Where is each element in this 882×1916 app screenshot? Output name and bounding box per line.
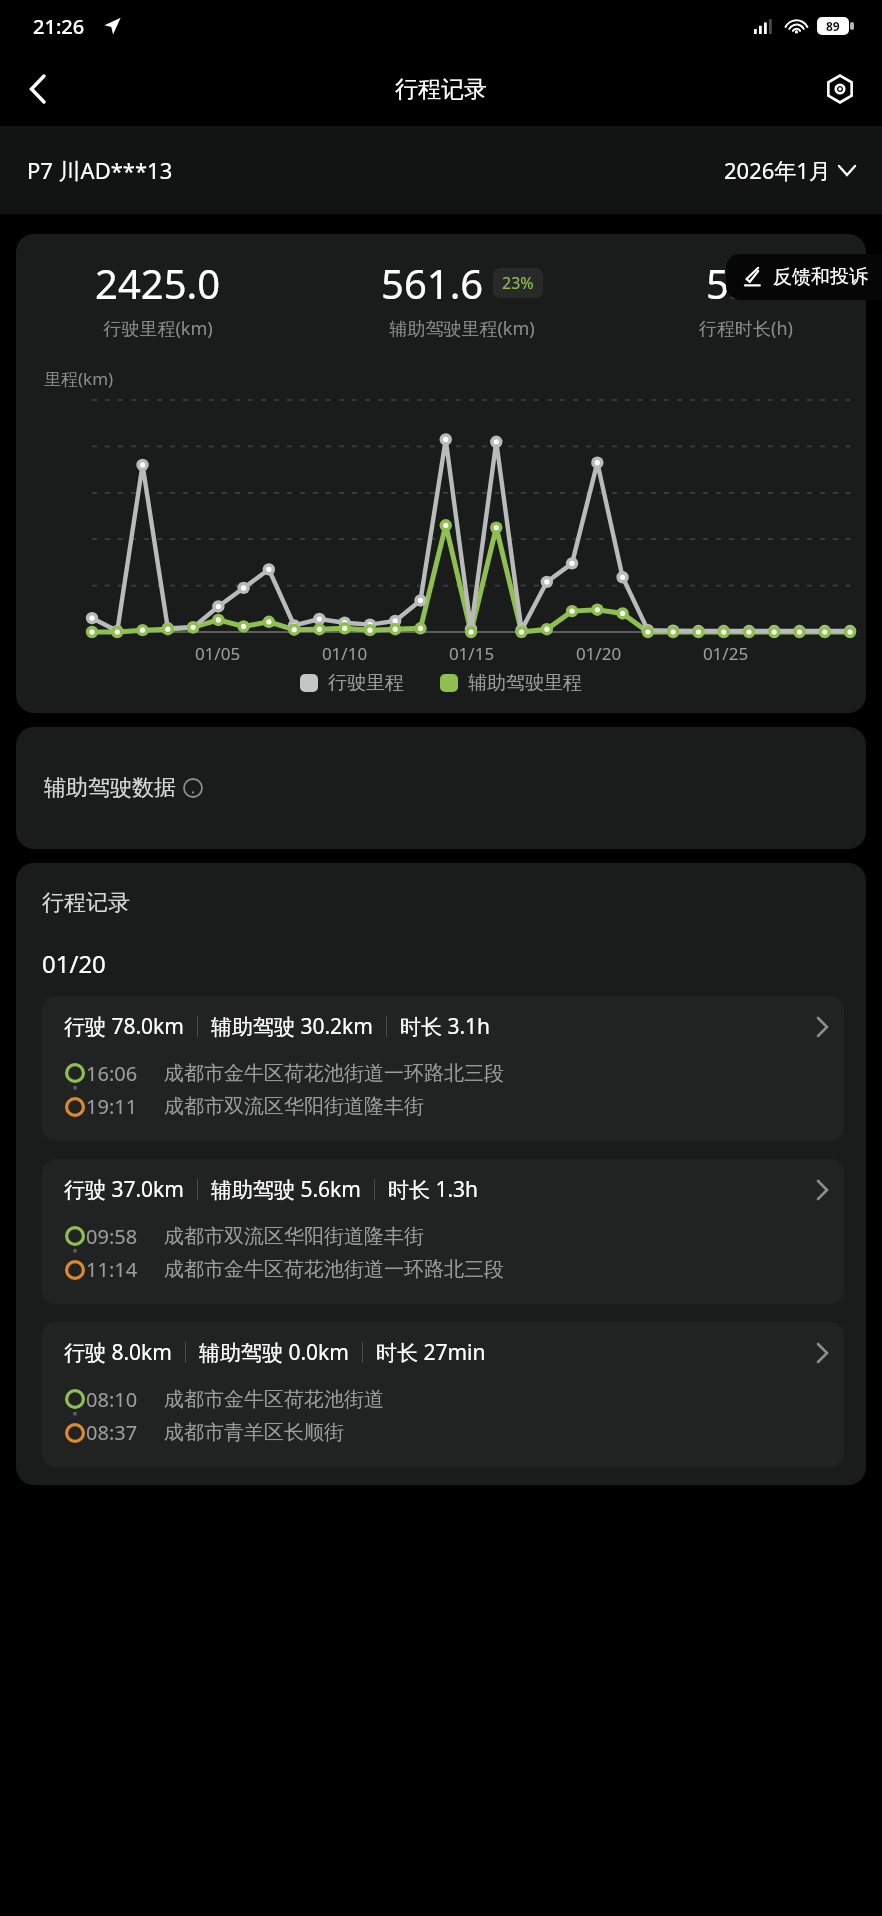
staticText: 2425.0	[95, 256, 221, 310]
staticText: 23%	[502, 272, 534, 294]
staticText: 行驶里程(km)	[103, 316, 213, 341]
button[interactable]: 2425.0	[16, 234, 866, 713]
staticText: 01/15	[408, 642, 535, 665]
staticText: 09:58	[86, 1223, 138, 1250]
staticText: 成都市金牛区荷花池街道一环路北三段	[164, 1257, 504, 1282]
staticText: 89	[826, 18, 840, 34]
staticText: 辅助驾驶数据	[44, 774, 176, 802]
staticText: 时长 3.1h	[400, 1012, 491, 1041]
staticText: 55.8	[706, 256, 786, 310]
staticText: 2026年1月	[724, 155, 831, 185]
button[interactable]: 行驶 8.0km	[42, 1322, 844, 1467]
button[interactable]: 行驶 78.0km	[42, 996, 844, 1141]
staticText: 辅助驾驶里程(km)	[389, 316, 535, 341]
staticText: 成都市青羊区长顺街	[164, 1420, 344, 1445]
staticText: 辅助驾驶 30.2km	[211, 1012, 373, 1041]
staticText: 时长 27min	[376, 1338, 486, 1367]
staticText: 辅助驾驶 0.0km	[199, 1338, 349, 1367]
staticText: 01/10	[281, 642, 408, 665]
button[interactable]: 行驶 37.0km	[42, 1159, 844, 1304]
staticText: 行驶 8.0km	[64, 1338, 172, 1367]
staticText: 01/20	[42, 947, 106, 980]
staticText: 成都市双流区华阳街道隆丰街	[164, 1224, 424, 1249]
staticText: 11:14	[86, 1256, 138, 1283]
button[interactable]: 辅助驾驶数据	[16, 727, 866, 849]
staticText: 行程记录	[395, 75, 487, 104]
staticText: 辅助驾驶里程	[468, 671, 582, 695]
staticText: 行程时长(h)	[699, 316, 793, 341]
button[interactable]: 反馈和投诉	[726, 254, 882, 300]
staticText: 16:06	[86, 1060, 138, 1087]
button[interactable]: Settings	[816, 65, 864, 113]
button[interactable]: 2026年1月	[724, 155, 855, 185]
staticText: 行驶 78.0km	[64, 1012, 184, 1041]
staticText: 行驶里程	[328, 671, 404, 695]
staticText: 成都市金牛区荷花池街道	[164, 1387, 384, 1412]
staticText: 成都市金牛区荷花池街道一环路北三段	[164, 1061, 504, 1086]
staticText: 01/25	[662, 642, 789, 665]
staticText: 19:11	[86, 1093, 138, 1120]
staticText: 行程记录	[42, 889, 130, 917]
staticText: 08:37	[86, 1419, 138, 1446]
staticText: 08:10	[86, 1386, 138, 1413]
staticText: 成都市双流区华阳街道隆丰街	[164, 1094, 424, 1119]
button[interactable]: Back	[12, 64, 62, 114]
staticText: 里程(km)	[44, 367, 114, 390]
staticText: 辅助驾驶 5.6km	[211, 1175, 361, 1204]
button[interactable]: P7 川AD***13	[27, 155, 724, 185]
staticText: 561.6	[381, 256, 484, 310]
staticText: 21:26	[33, 13, 85, 40]
staticText: 01/05	[154, 642, 281, 665]
staticText: 反馈和投诉	[773, 265, 868, 289]
staticText: 时长 1.3h	[388, 1175, 479, 1204]
staticText: 01/20	[535, 642, 662, 665]
staticText: 行驶 37.0km	[64, 1175, 184, 1204]
